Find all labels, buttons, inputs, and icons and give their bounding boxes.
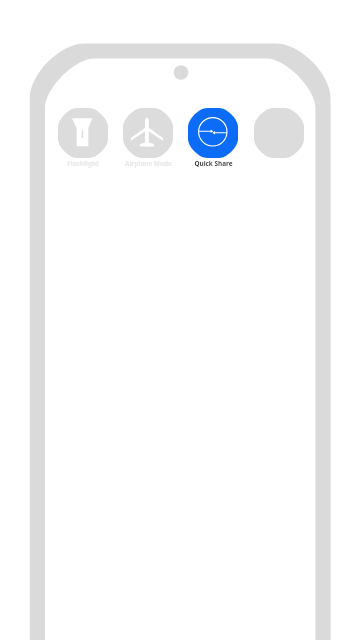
button[interactable]: More tiles	[254, 108, 304, 158]
button[interactable]: Flashlight	[58, 108, 108, 158]
staticText: Airplane Mode	[125, 159, 172, 168]
staticText: Flashlight	[67, 159, 99, 168]
staticText: Quick Share	[194, 159, 233, 168]
button[interactable]: Quick Share	[188, 108, 238, 158]
button[interactable]: Airplane Mode	[123, 108, 173, 158]
